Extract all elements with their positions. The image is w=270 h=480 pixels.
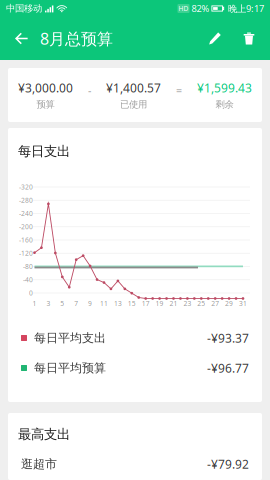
staticText: =	[176, 83, 182, 97]
button[interactable]: Delete	[232, 17, 266, 60]
staticText: -200	[19, 222, 33, 231]
staticText: 0	[29, 289, 33, 297]
staticText: 逛超市	[21, 457, 57, 471]
staticText: 3	[46, 299, 50, 308]
staticText: -240	[19, 209, 33, 218]
staticText: 晚上9:17	[228, 2, 264, 15]
staticText: 82%	[191, 2, 209, 15]
staticText: 已使用	[120, 99, 147, 110]
staticText: 15	[128, 299, 136, 308]
staticText: 每日平均预算	[34, 361, 106, 375]
button[interactable]: Edit	[198, 17, 232, 60]
staticText: 剩余	[215, 99, 233, 110]
staticText: -320	[19, 183, 33, 191]
staticText: -¥79.92	[207, 456, 249, 472]
staticText: 8月总预算	[40, 28, 113, 49]
staticText: 25	[197, 299, 205, 308]
staticText: 预算	[36, 99, 54, 110]
staticText: 19	[156, 299, 164, 308]
staticText: 17	[142, 299, 150, 308]
staticText: 1	[32, 299, 36, 308]
staticText: -160	[19, 236, 33, 244]
staticText: -280	[19, 196, 33, 205]
staticText: -¥93.37	[207, 330, 249, 346]
staticText: 9	[88, 299, 92, 308]
staticText: 21	[169, 299, 177, 308]
staticText: 7	[74, 299, 78, 308]
staticText: -40	[23, 275, 33, 284]
staticText: -120	[19, 249, 33, 258]
staticText: 每日支出	[18, 143, 70, 159]
staticText: ¥1,400.57	[106, 80, 161, 96]
staticText: ¥3,000.00	[18, 80, 73, 96]
staticText: 13	[114, 299, 122, 308]
staticText: ¥1,599.43	[197, 80, 252, 96]
staticText: 27	[211, 299, 219, 308]
staticText: 31	[239, 299, 247, 308]
staticText: 每日平均支出	[34, 331, 106, 345]
staticText: 5	[60, 299, 64, 308]
staticText: 23	[183, 299, 191, 308]
button[interactable]: Back	[4, 17, 40, 60]
staticText: 中国移动	[6, 3, 42, 14]
staticText: 11	[100, 299, 108, 308]
staticText: 29	[225, 299, 233, 308]
staticText: -	[88, 83, 91, 97]
staticText: -¥96.77	[207, 360, 249, 376]
staticText: 最高支出	[18, 426, 70, 442]
staticText: -80	[23, 262, 33, 271]
staticText: HD	[178, 4, 188, 13]
